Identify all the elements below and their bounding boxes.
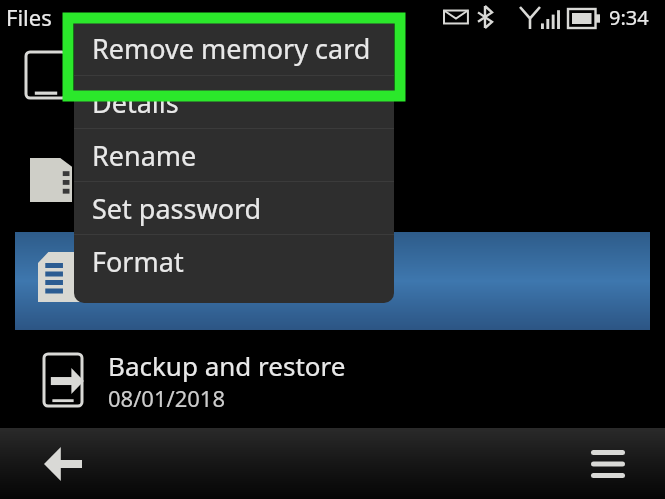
staticText: Details [92,84,179,121]
button[interactable]: Back [24,428,104,499]
button[interactable] [15,232,650,330]
button[interactable]: Details [74,76,394,128]
staticText: Files [6,2,52,32]
staticText: Format [92,243,184,280]
button[interactable]: Menu [573,428,643,499]
staticText: Set password [92,190,262,227]
staticText: Remove memory card [92,30,371,67]
staticText: 08/01/2018 [108,383,226,413]
button[interactable]: Rename [74,129,394,181]
staticText: Backup and restore [108,348,346,383]
button[interactable]: Backup and restore [0,340,665,420]
button[interactable]: Set password [74,182,394,234]
staticText: Rename [92,137,197,174]
button[interactable]: Remove memory card [74,22,394,75]
button[interactable]: Format [74,235,394,287]
staticText: 9:34 [609,4,649,31]
